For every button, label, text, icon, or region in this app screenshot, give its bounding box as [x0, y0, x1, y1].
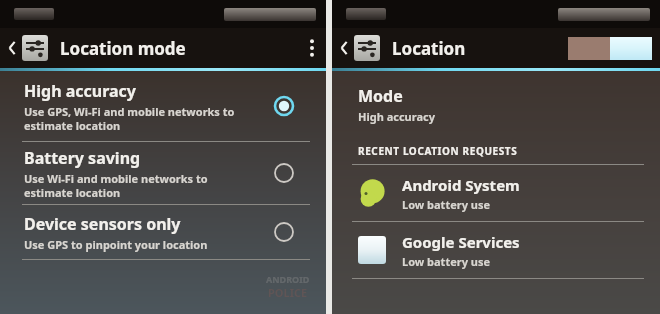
- staticText: Use GPS to pinpoint your location: [24, 237, 208, 252]
- button[interactable]: Device sensors only: [0, 205, 326, 259]
- button[interactable]: Mode: [332, 83, 660, 130]
- staticText: RECENT LOCATION REQUESTS: [358, 144, 518, 158]
- staticText: Low battery use: [402, 254, 491, 269]
- staticText: POLICE: [268, 285, 308, 300]
- staticText: Google Services: [402, 232, 520, 252]
- button[interactable]: Android System: [332, 165, 660, 221]
- button[interactable]: High accuracy: [0, 71, 326, 141]
- button[interactable]: Google Services: [332, 222, 660, 278]
- staticText: High accuracy: [24, 80, 137, 102]
- button[interactable]: Navigate up: [0, 31, 52, 65]
- button[interactable]: Navigate up: [332, 31, 384, 65]
- staticText: Device sensors only: [24, 213, 181, 235]
- button[interactable]: Location on/off: [564, 33, 656, 64]
- button[interactable]: Battery saving: [0, 142, 326, 204]
- staticText: High accuracy: [358, 109, 435, 124]
- staticText: Android System: [402, 175, 520, 195]
- staticText: Mode: [358, 85, 403, 107]
- staticText: Low battery use: [402, 197, 491, 212]
- staticText: Battery saving: [24, 147, 141, 169]
- button[interactable]: More options: [298, 30, 326, 66]
- staticText: ANDROID: [266, 273, 310, 285]
- staticText: Location: [392, 37, 466, 60]
- staticText: Use GPS, Wi-Fi and mobile networks to es…: [24, 104, 235, 133]
- staticText: Use Wi-Fi and mobile networks to estimat…: [24, 171, 208, 200]
- staticText: Location mode: [60, 37, 186, 60]
